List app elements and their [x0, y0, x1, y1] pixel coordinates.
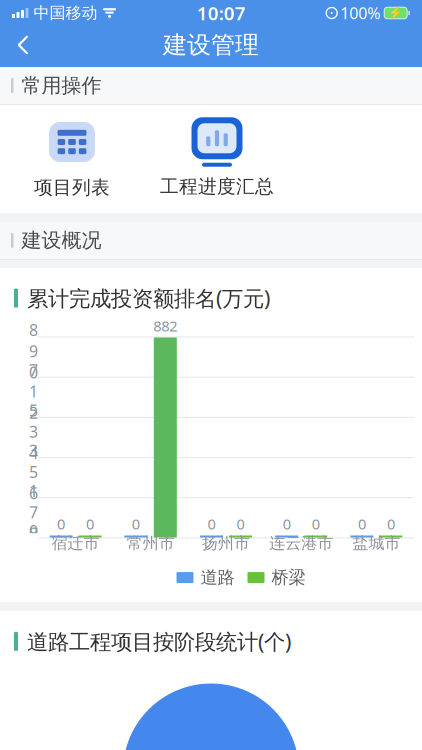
staticText: 连云港市	[269, 533, 333, 553]
staticText: 建设概况	[21, 228, 101, 253]
staticText: 534	[29, 400, 38, 463]
staticText: 0	[207, 514, 215, 533]
staticText: 712	[29, 359, 38, 423]
staticText: 建设管理	[163, 30, 259, 60]
staticText: 356	[29, 440, 38, 504]
button[interactable]: 项目列表	[2, 105, 142, 213]
staticText: 项目列表	[34, 176, 110, 199]
staticText: ⚡	[388, 6, 403, 20]
staticText: 扬州市	[202, 533, 250, 553]
staticText: 中国移动	[33, 3, 97, 23]
staticText: 0	[358, 514, 366, 533]
staticText: 宿迁市	[52, 533, 100, 553]
staticText: 0	[29, 520, 38, 541]
staticText: 0	[132, 514, 140, 533]
staticText: 100%	[340, 2, 380, 24]
staticText: 桥梁	[271, 567, 305, 588]
staticText: 890	[29, 319, 38, 383]
staticText: 道路工程项目按阶段统计(个)	[27, 627, 291, 655]
staticText: 882	[153, 316, 177, 335]
staticText: 累计完成投资额排名(万元)	[27, 284, 270, 312]
staticText: 0	[283, 514, 291, 533]
button[interactable]: 返回	[0, 23, 46, 67]
staticText: 0	[236, 514, 244, 533]
button[interactable]: 工程进度汇总	[142, 105, 292, 210]
staticText: 0	[387, 514, 395, 533]
staticText: 0	[312, 514, 320, 533]
staticText: 0	[57, 514, 65, 533]
staticText: 10:07	[197, 1, 246, 25]
staticText: 常州市	[127, 533, 175, 553]
staticText: 常用操作	[21, 73, 101, 98]
staticText: 道路	[200, 567, 234, 588]
staticText: 盐城市	[352, 533, 400, 553]
staticText: 0	[86, 514, 94, 533]
staticText: 工程进度汇总	[160, 175, 274, 198]
staticText: 178	[29, 480, 38, 544]
